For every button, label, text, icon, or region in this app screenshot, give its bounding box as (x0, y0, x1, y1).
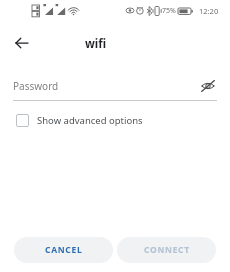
button[interactable]: Show advanced options (16, 109, 143, 132)
staticText: 12:20 (199, 6, 219, 16)
staticText: CONNECT (144, 244, 190, 256)
staticText: CANCEL (45, 244, 83, 256)
button[interactable]: Show password (198, 76, 218, 96)
staticText: wifi (85, 36, 107, 52)
staticText: 75% (162, 6, 176, 16)
staticText: Show advanced options (37, 114, 143, 127)
button[interactable]: CANCEL (14, 237, 113, 263)
button[interactable]: Navigate up (6, 27, 38, 59)
staticText: Password (13, 79, 59, 93)
button[interactable]: CONNECT (117, 237, 216, 263)
